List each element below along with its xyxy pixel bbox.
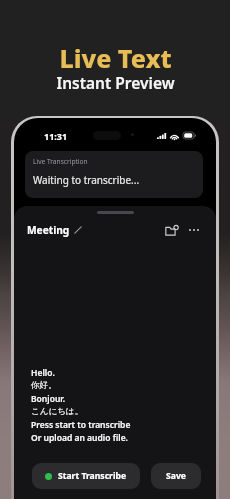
- staticText: Instant Preview: [56, 72, 175, 93]
- staticText: こんにちは。: [31, 406, 83, 417]
- button[interactable]: Save: [151, 463, 201, 489]
- staticText: Meeting: [27, 223, 70, 237]
- staticText: Or upload an audio file.: [31, 432, 128, 444]
- staticText: 11:31: [44, 130, 68, 142]
- button[interactable]: Meeting: [27, 223, 82, 237]
- staticText: Bonjour.: [31, 393, 66, 405]
- staticText: 你好。: [31, 380, 57, 391]
- button[interactable]: Start Transcribe: [32, 463, 140, 489]
- button[interactable]: More options: [186, 222, 202, 238]
- staticText: Press start to transcribe: [31, 419, 131, 431]
- button[interactable]: Move to folder: [164, 222, 180, 238]
- staticText: Live Transcription: [33, 157, 88, 166]
- staticText: Live Text: [59, 41, 172, 75]
- staticText: Waiting to transcribe...: [33, 173, 140, 187]
- staticText: Hello.: [31, 367, 55, 379]
- staticText: Save: [166, 470, 186, 482]
- staticText: Start Transcribe: [58, 470, 127, 482]
